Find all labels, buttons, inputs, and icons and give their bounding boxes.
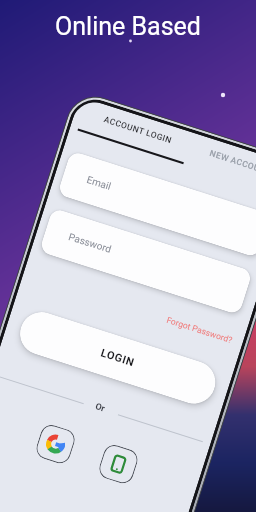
staticText: Online Based	[0, 12, 256, 512]
staticText: LOGIN	[99, 346, 136, 369]
staticText: Or	[94, 401, 107, 415]
button[interactable]: Password	[39, 208, 253, 315]
button[interactable]: Email	[57, 150, 256, 258]
button[interactable]: NEW ACCOUNT	[208, 148, 256, 177]
button[interactable]: LOGIN	[14, 307, 221, 409]
button[interactable]: Sign in with phone number	[96, 442, 140, 486]
button[interactable]: Forgot Password?	[153, 311, 233, 345]
button[interactable]: ACCOUNT LOGIN	[103, 114, 173, 145]
button[interactable]: Sign in with Google	[34, 422, 78, 466]
staticText: Email	[85, 174, 113, 193]
staticText: Password	[67, 231, 113, 256]
